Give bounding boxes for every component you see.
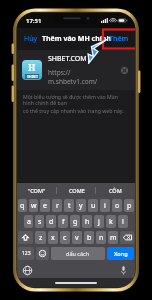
- staticText: r: [56, 201, 59, 211]
- staticText: m: [110, 233, 117, 243]
- staticText: u: [91, 201, 96, 211]
- staticText: o: [115, 201, 120, 211]
- staticText: https://m.shbetv1.com/: [48, 68, 118, 86]
- staticText: Thêm: [109, 34, 129, 44]
- staticText: Hủy: [24, 34, 38, 44]
- button[interactable]: o: [112, 199, 122, 212]
- button[interactable]: t: [64, 199, 74, 212]
- staticText: g: [73, 217, 78, 227]
- staticText: c: [63, 233, 67, 243]
- button[interactable]: Emoji: [36, 247, 49, 260]
- staticText: x: [51, 233, 55, 243]
- staticText: e: [43, 201, 47, 211]
- staticText: h: [85, 217, 90, 227]
- staticText: k: [109, 217, 113, 227]
- button[interactable]: Shift: [18, 231, 33, 244]
- staticText: a: [27, 217, 31, 227]
- staticText: dấu cách: [66, 250, 90, 257]
- button[interactable]: Dictation: [117, 264, 130, 277]
- button[interactable]: COME: [57, 183, 96, 197]
- button[interactable]: w: [29, 199, 38, 212]
- button[interactable]: k: [106, 215, 116, 228]
- staticText: CÔM: [109, 187, 122, 194]
- button[interactable]: a: [24, 215, 33, 228]
- button[interactable]: u: [88, 199, 98, 212]
- button[interactable]: c: [60, 231, 70, 244]
- button[interactable]: m: [108, 231, 118, 244]
- button[interactable]: Hủy: [17, 30, 44, 48]
- button[interactable]: g: [70, 215, 80, 228]
- button[interactable]: q: [18, 199, 27, 212]
- button[interactable]: Clear text: [118, 64, 130, 76]
- staticText: v: [75, 233, 79, 243]
- staticText: j: [98, 217, 100, 227]
- staticText: l: [122, 217, 124, 227]
- button[interactable]: 123: [18, 247, 34, 260]
- staticText: w: [31, 201, 37, 211]
- staticText: COME: [69, 187, 85, 194]
- button[interactable]: p: [124, 199, 134, 212]
- button[interactable]: Thêm: [103, 28, 135, 50]
- button[interactable]: r: [52, 199, 62, 212]
- button[interactable]: h: [82, 215, 92, 228]
- staticText: H: [28, 61, 36, 73]
- staticText: t: [68, 201, 71, 211]
- staticText: Xong: [114, 250, 128, 257]
- button[interactable]: n: [96, 231, 106, 244]
- staticText: q: [20, 201, 25, 211]
- staticText: z: [39, 233, 43, 243]
- staticText: có thể truy cập nhanh vào trang web này.: [23, 107, 124, 114]
- button[interactable]: dấu cách: [51, 247, 105, 260]
- button[interactable]: Backspace: [120, 231, 134, 244]
- button[interactable]: d: [46, 215, 56, 228]
- button[interactable]: j: [94, 215, 104, 228]
- button[interactable]: "COM": [17, 183, 57, 197]
- staticText: i: [104, 201, 106, 211]
- button[interactable]: s: [35, 215, 44, 228]
- staticText: p: [127, 201, 132, 211]
- button[interactable]: Change keyboard language: [21, 264, 34, 277]
- staticText: f: [62, 217, 65, 227]
- staticText: b: [87, 233, 92, 243]
- button[interactable]: CÔM: [96, 183, 135, 197]
- button[interactable]: f: [58, 215, 68, 228]
- staticText: Thêm vào MH chính: [42, 34, 111, 44]
- button[interactable]: y: [76, 199, 86, 212]
- button[interactable]: l: [118, 215, 128, 228]
- staticText: SHBET.COM: [48, 54, 87, 64]
- button[interactable]: e: [40, 199, 50, 212]
- staticText: SHBET: [27, 74, 38, 79]
- button[interactable]: b: [84, 231, 94, 244]
- staticText: 17:51: [26, 17, 42, 25]
- button[interactable]: i: [100, 199, 110, 212]
- staticText: 123: [22, 250, 31, 257]
- staticText: s: [38, 217, 42, 227]
- button[interactable]: z: [35, 231, 46, 244]
- button[interactable]: v: [72, 231, 82, 244]
- staticText: Một biểu tượng sẽ được thêm vào Màn hình…: [23, 93, 129, 107]
- button[interactable]: x: [48, 231, 58, 244]
- staticText: n: [99, 233, 104, 243]
- staticText: "COM": [28, 187, 46, 194]
- button[interactable]: Xong: [107, 247, 134, 260]
- staticText: d: [49, 217, 54, 227]
- staticText: y: [79, 201, 83, 211]
